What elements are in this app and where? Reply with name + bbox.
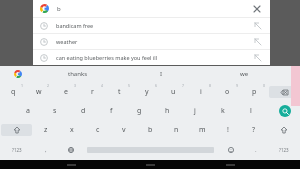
staticText: thanks <box>68 70 88 78</box>
staticText: d <box>81 106 86 116</box>
staticText: b <box>148 125 153 135</box>
button[interactable]: t <box>106 82 133 101</box>
button[interactable]: can eating blueberries make you feel ill <box>33 50 270 65</box>
button[interactable]: d <box>69 101 97 120</box>
staticText: h <box>165 106 170 116</box>
button[interactable]: u <box>160 82 187 101</box>
staticText: I <box>160 70 163 78</box>
button[interactable]: Recent apps <box>221 160 239 169</box>
button[interactable]: x <box>59 120 85 140</box>
staticText: weather <box>56 38 252 45</box>
staticText: 3 <box>74 83 77 88</box>
staticText: m <box>199 125 206 135</box>
button[interactable]: i <box>187 82 214 101</box>
button[interactable]: Use suggestion <box>252 52 263 63</box>
staticText: o <box>225 87 230 97</box>
button[interactable]: m <box>189 120 215 140</box>
button[interactable]: g <box>125 101 153 120</box>
button[interactable]: ? <box>241 120 267 140</box>
staticText: 1 <box>21 83 24 88</box>
button[interactable]: ! <box>215 120 241 140</box>
staticText: v <box>122 125 126 135</box>
button[interactable]: e <box>52 82 79 101</box>
button[interactable]: b <box>33 0 270 17</box>
staticText: ?123 <box>12 147 22 153</box>
button[interactable]: y <box>133 82 160 101</box>
staticText: z <box>44 125 48 135</box>
button[interactable]: n <box>163 120 189 140</box>
button[interactable]: j <box>181 101 209 120</box>
button[interactable]: k <box>209 101 237 120</box>
button[interactable]: we <box>203 66 286 82</box>
staticText: bandicam free <box>56 22 252 29</box>
staticText: f <box>110 106 113 116</box>
button[interactable]: s <box>41 101 69 120</box>
button[interactable]: Emoji <box>218 140 243 160</box>
button[interactable]: b <box>137 120 163 140</box>
button[interactable]: p <box>241 82 268 101</box>
staticText: a <box>26 106 30 116</box>
staticText: , <box>45 146 47 154</box>
button[interactable]: r <box>79 82 106 101</box>
button[interactable]: l <box>237 101 265 120</box>
button[interactable]: w <box>26 82 52 101</box>
staticText: b <box>57 5 251 13</box>
button[interactable]: ?123 <box>268 140 300 160</box>
button[interactable]: Change language <box>58 140 83 160</box>
button[interactable]: z <box>33 120 59 140</box>
button[interactable]: Clear search <box>251 3 263 15</box>
staticText: 5 <box>128 83 131 88</box>
staticText: ? <box>252 125 256 135</box>
staticText: l <box>250 106 252 116</box>
button[interactable]: weather <box>33 34 270 49</box>
button[interactable]: o <box>214 82 241 101</box>
button[interactable]: I <box>120 66 203 82</box>
staticText: n <box>174 125 179 135</box>
staticText: 8 <box>209 83 212 88</box>
staticText: q <box>11 87 16 97</box>
staticText: x <box>70 125 74 135</box>
button[interactable]: a <box>14 101 41 120</box>
button[interactable]: Shift <box>1 121 32 139</box>
staticText: s <box>53 106 57 116</box>
staticText: 2 <box>47 83 50 88</box>
staticText: ! <box>227 125 229 135</box>
button[interactable]: Home <box>141 160 159 169</box>
button[interactable]: Back <box>62 160 80 169</box>
staticText: i <box>200 87 202 97</box>
staticText: w <box>36 87 42 97</box>
button[interactable]: c <box>85 120 111 140</box>
button[interactable]: q <box>0 82 26 101</box>
staticText: 7 <box>182 83 185 88</box>
staticText: c <box>96 125 100 135</box>
staticText: 4 <box>101 83 104 88</box>
staticText: y <box>145 87 149 97</box>
button[interactable]: Use suggestion <box>252 36 263 47</box>
staticText: e <box>64 87 68 97</box>
staticText: . <box>255 146 257 154</box>
button[interactable]: Shift <box>267 120 300 140</box>
staticText: can eating blueberries make you feel ill <box>56 54 252 61</box>
button[interactable]: f <box>97 101 125 120</box>
staticText: r <box>91 87 94 97</box>
button[interactable]: Use suggestion <box>252 20 263 31</box>
button[interactable]: Google <box>0 66 36 82</box>
button[interactable]: ?123 <box>0 140 33 160</box>
button[interactable]: Backspace <box>269 83 299 100</box>
button[interactable] <box>83 140 218 160</box>
button[interactable]: bandicam free <box>33 18 270 33</box>
button[interactable]: thanks <box>36 66 120 82</box>
staticText: j <box>194 106 196 116</box>
button[interactable]: v <box>111 120 137 140</box>
staticText: g <box>137 106 142 116</box>
staticText: 0 <box>263 83 266 88</box>
button[interactable]: h <box>153 101 181 120</box>
staticText: t <box>118 87 121 97</box>
staticText: 6 <box>155 83 158 88</box>
staticText: u <box>171 87 176 97</box>
staticText: we <box>240 70 249 78</box>
button[interactable]: Search <box>269 101 300 120</box>
staticText: p <box>252 87 257 97</box>
